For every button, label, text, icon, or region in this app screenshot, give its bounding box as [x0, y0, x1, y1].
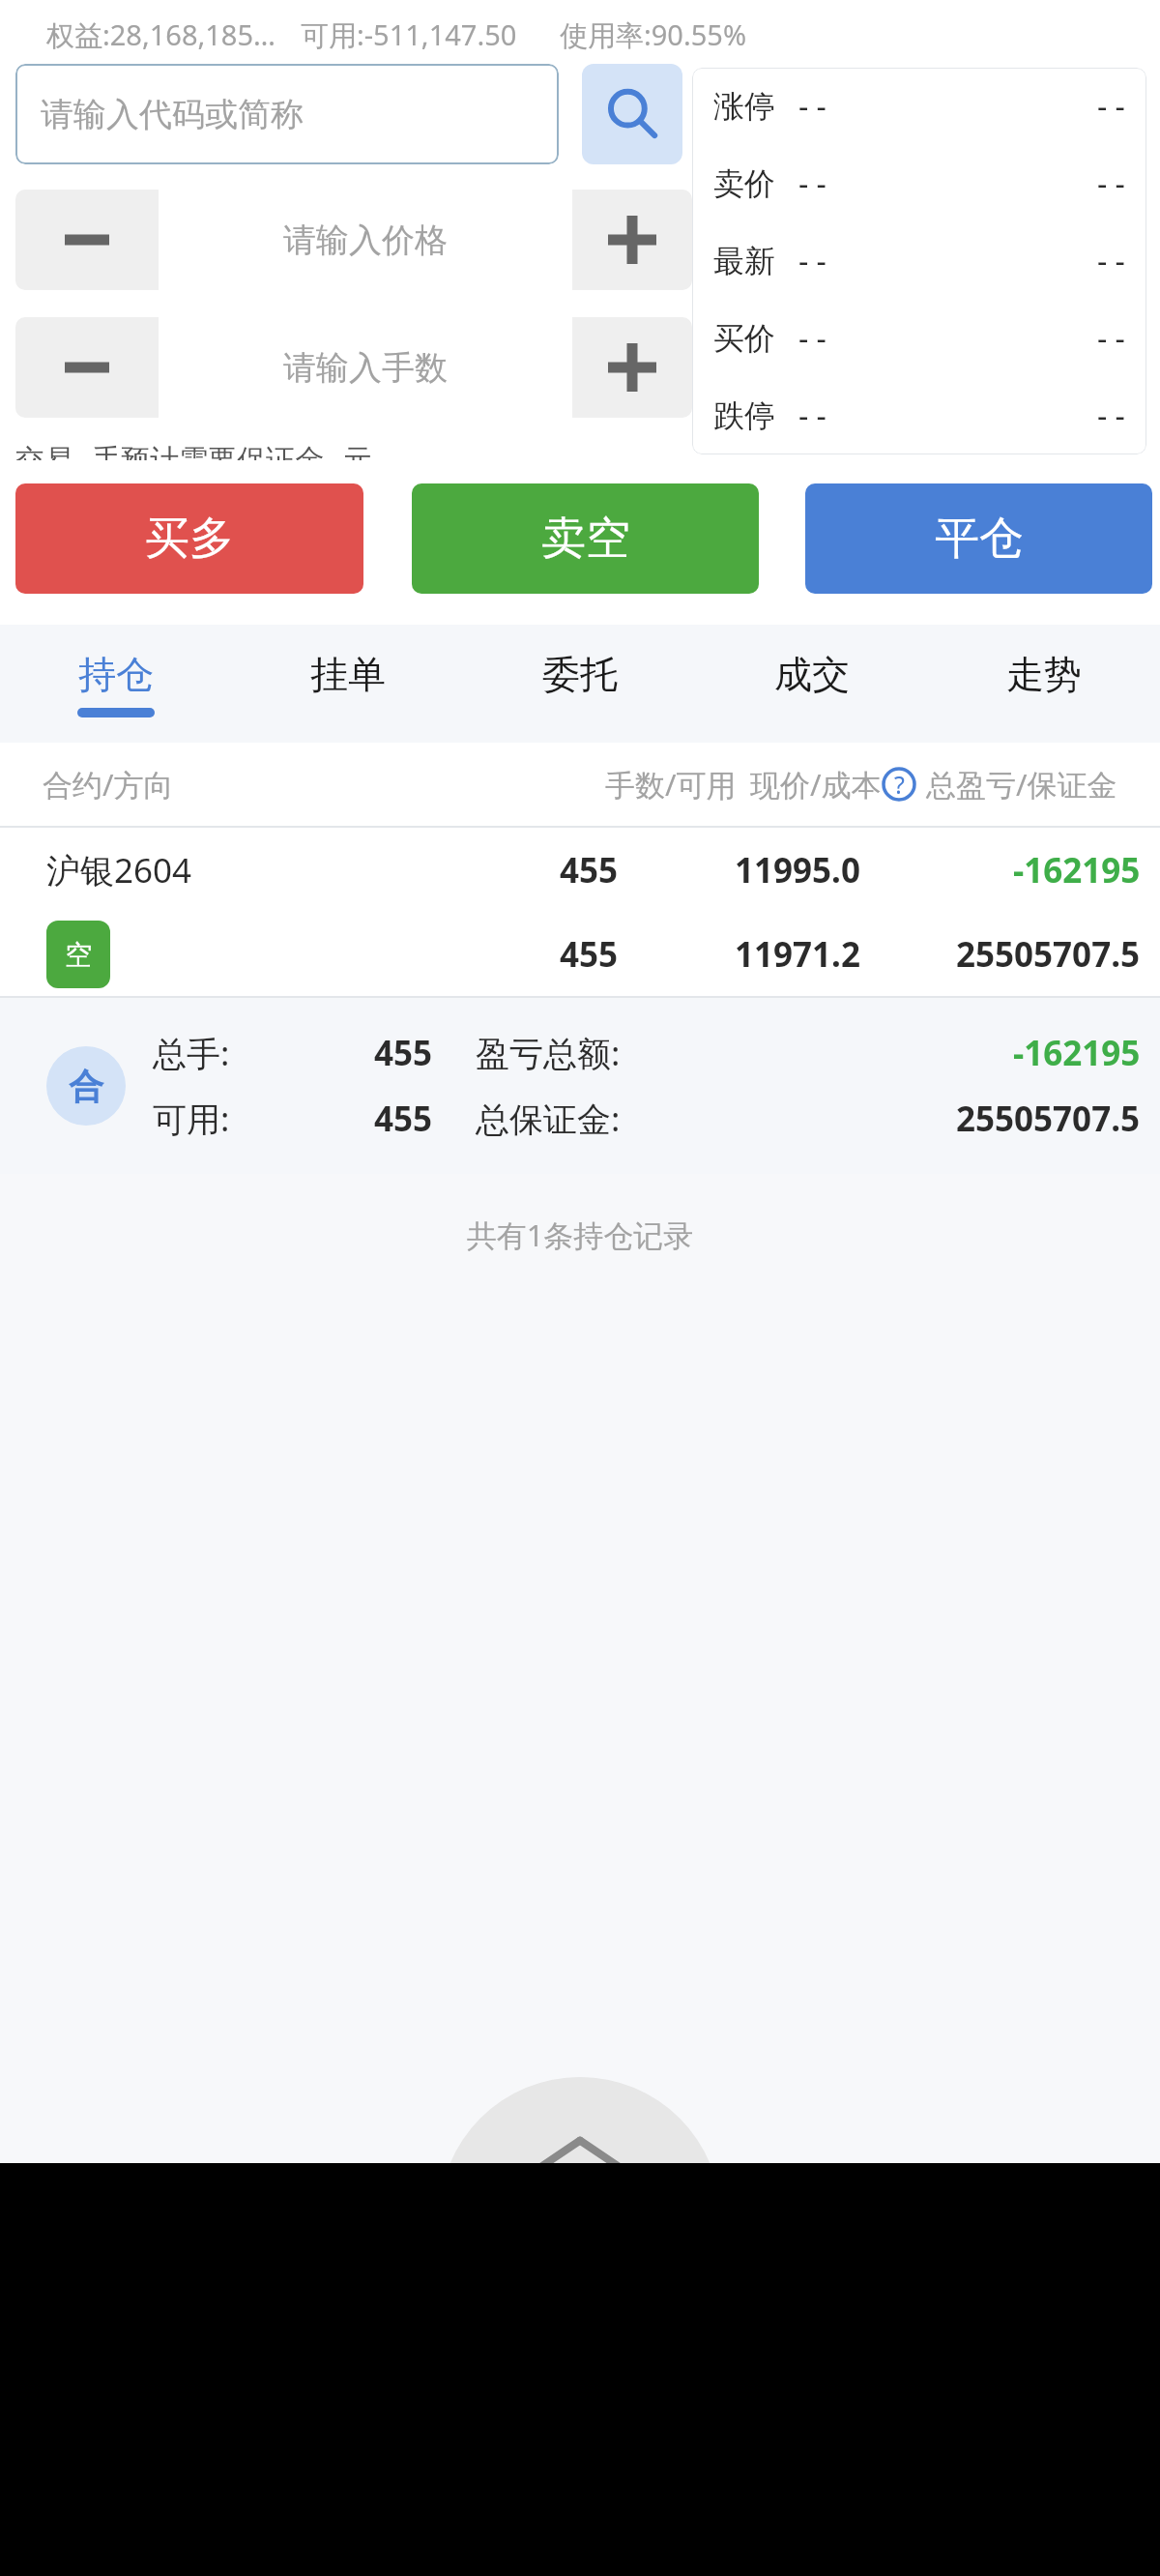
staticText: 卖价	[713, 164, 775, 203]
staticText: 手数/可用	[605, 764, 737, 805]
staticText: 买价	[713, 319, 775, 358]
staticText: - -	[1097, 85, 1125, 128]
staticText: 请输入价格	[283, 220, 448, 261]
button[interactable]: 委托	[464, 625, 696, 743]
button[interactable]: Decrease	[15, 317, 159, 418]
staticText: 请输入手数	[283, 347, 448, 389]
staticText: 11995.0	[735, 847, 860, 893]
staticText: 交易--手预计需要保证金--元	[15, 439, 372, 460]
button[interactable]: 平仓	[805, 483, 1152, 594]
button[interactable]: 合	[0, 998, 1160, 1174]
staticText: ?	[894, 768, 905, 801]
staticText: 总盈亏/保证金	[926, 764, 1117, 805]
staticText: - -	[1097, 240, 1125, 282]
button[interactable]: 买多	[15, 483, 363, 594]
staticText: 合	[69, 1065, 103, 1108]
staticText: 跌停	[713, 396, 775, 435]
staticText: -162195	[1013, 847, 1141, 893]
staticText: 涨停	[713, 87, 775, 126]
staticText: 卖空	[541, 511, 630, 567]
button[interactable]: 请输入代码或简称	[15, 64, 559, 164]
button[interactable]: Increase	[572, 317, 692, 418]
button[interactable]: 请输入手数	[159, 317, 572, 418]
staticText: 455	[560, 847, 619, 893]
button[interactable]: Increase	[572, 190, 692, 290]
staticText: 盈亏总额:	[476, 1030, 621, 1076]
button[interactable]: Decrease	[15, 190, 159, 290]
button[interactable]: 请输入价格	[159, 190, 572, 290]
staticText: 455	[374, 1030, 433, 1076]
staticText: 请输入代码或简称	[41, 94, 304, 135]
button[interactable]: 走势	[928, 625, 1160, 743]
staticText: - -	[798, 162, 826, 205]
staticText: 使用率:90.55%	[560, 15, 746, 54]
staticText: 成交	[774, 651, 850, 698]
staticText: 可用:	[153, 1096, 230, 1142]
staticText: 25505707.5	[956, 931, 1141, 978]
staticText: 挂单	[310, 651, 386, 698]
staticText: 空	[65, 938, 92, 972]
staticText: 455	[374, 1096, 433, 1142]
staticText: 现价/成本	[750, 764, 882, 805]
button[interactable]: 挂单	[232, 625, 464, 743]
staticText: - -	[798, 317, 826, 360]
staticText: - -	[1097, 162, 1125, 205]
button[interactable]: Help	[882, 767, 916, 802]
staticText: 11971.2	[735, 931, 860, 978]
staticText: 总手:	[153, 1030, 230, 1076]
staticText: 买多	[145, 511, 234, 567]
staticText: 共有1条持仓记录	[0, 1215, 1160, 1255]
staticText: 25505707.5	[956, 1096, 1141, 1142]
staticText: - -	[1097, 317, 1125, 360]
staticText: - -	[1097, 395, 1125, 437]
staticText: 沪银2604	[46, 847, 192, 893]
staticText: 455	[560, 931, 619, 978]
staticText: - -	[798, 240, 826, 282]
staticText: -162195	[1013, 1030, 1141, 1076]
staticText: 权益:28,168,185…	[46, 15, 275, 54]
staticText: 走势	[1006, 651, 1082, 698]
button[interactable]: 成交	[696, 625, 928, 743]
staticText: 合约/方向	[43, 764, 174, 805]
staticText: 可用:-511,147.50	[301, 15, 517, 54]
staticText: 总保证金:	[476, 1096, 621, 1142]
staticText: - -	[798, 85, 826, 128]
staticText: 委托	[542, 651, 618, 698]
button[interactable]: 沪银2604	[0, 828, 1160, 996]
staticText: 最新	[713, 242, 775, 280]
staticText: 平仓	[935, 511, 1024, 567]
button[interactable]: 持仓	[0, 625, 232, 743]
button[interactable]	[0, 2163, 1160, 2576]
staticText: - -	[798, 395, 826, 437]
button[interactable]: 卖空	[412, 483, 759, 594]
staticText: 持仓	[78, 651, 154, 698]
button[interactable]: Search	[582, 64, 682, 164]
